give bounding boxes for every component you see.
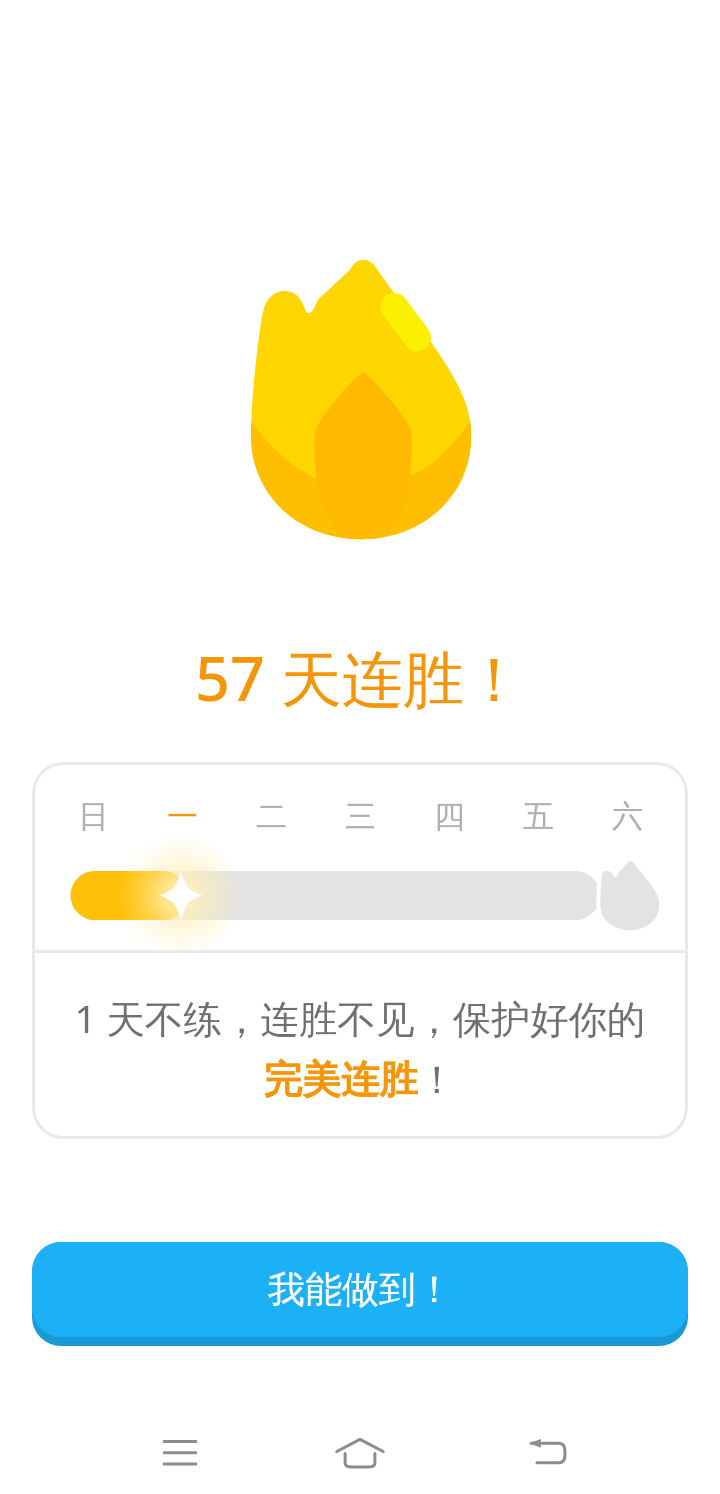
- staticText: 四: [434, 797, 465, 836]
- staticText: 五: [523, 797, 554, 836]
- button[interactable]: Back: [487, 1412, 607, 1494]
- button[interactable]: Home: [300, 1412, 420, 1494]
- staticText: 三: [345, 797, 376, 836]
- staticText: 六: [612, 797, 643, 836]
- button[interactable]: Recent apps: [120, 1412, 240, 1494]
- staticText: 一: [167, 797, 198, 836]
- staticText: 日: [78, 797, 109, 836]
- staticText: 我能做到！: [268, 1266, 453, 1313]
- staticText: 57 天连胜！: [195, 636, 525, 716]
- button[interactable]: 我能做到！: [32, 1242, 688, 1346]
- staticText: 二: [256, 797, 287, 836]
- staticText: 1 天不练，连胜不见，保护好你的 完美连胜！: [52, 992, 668, 1104]
